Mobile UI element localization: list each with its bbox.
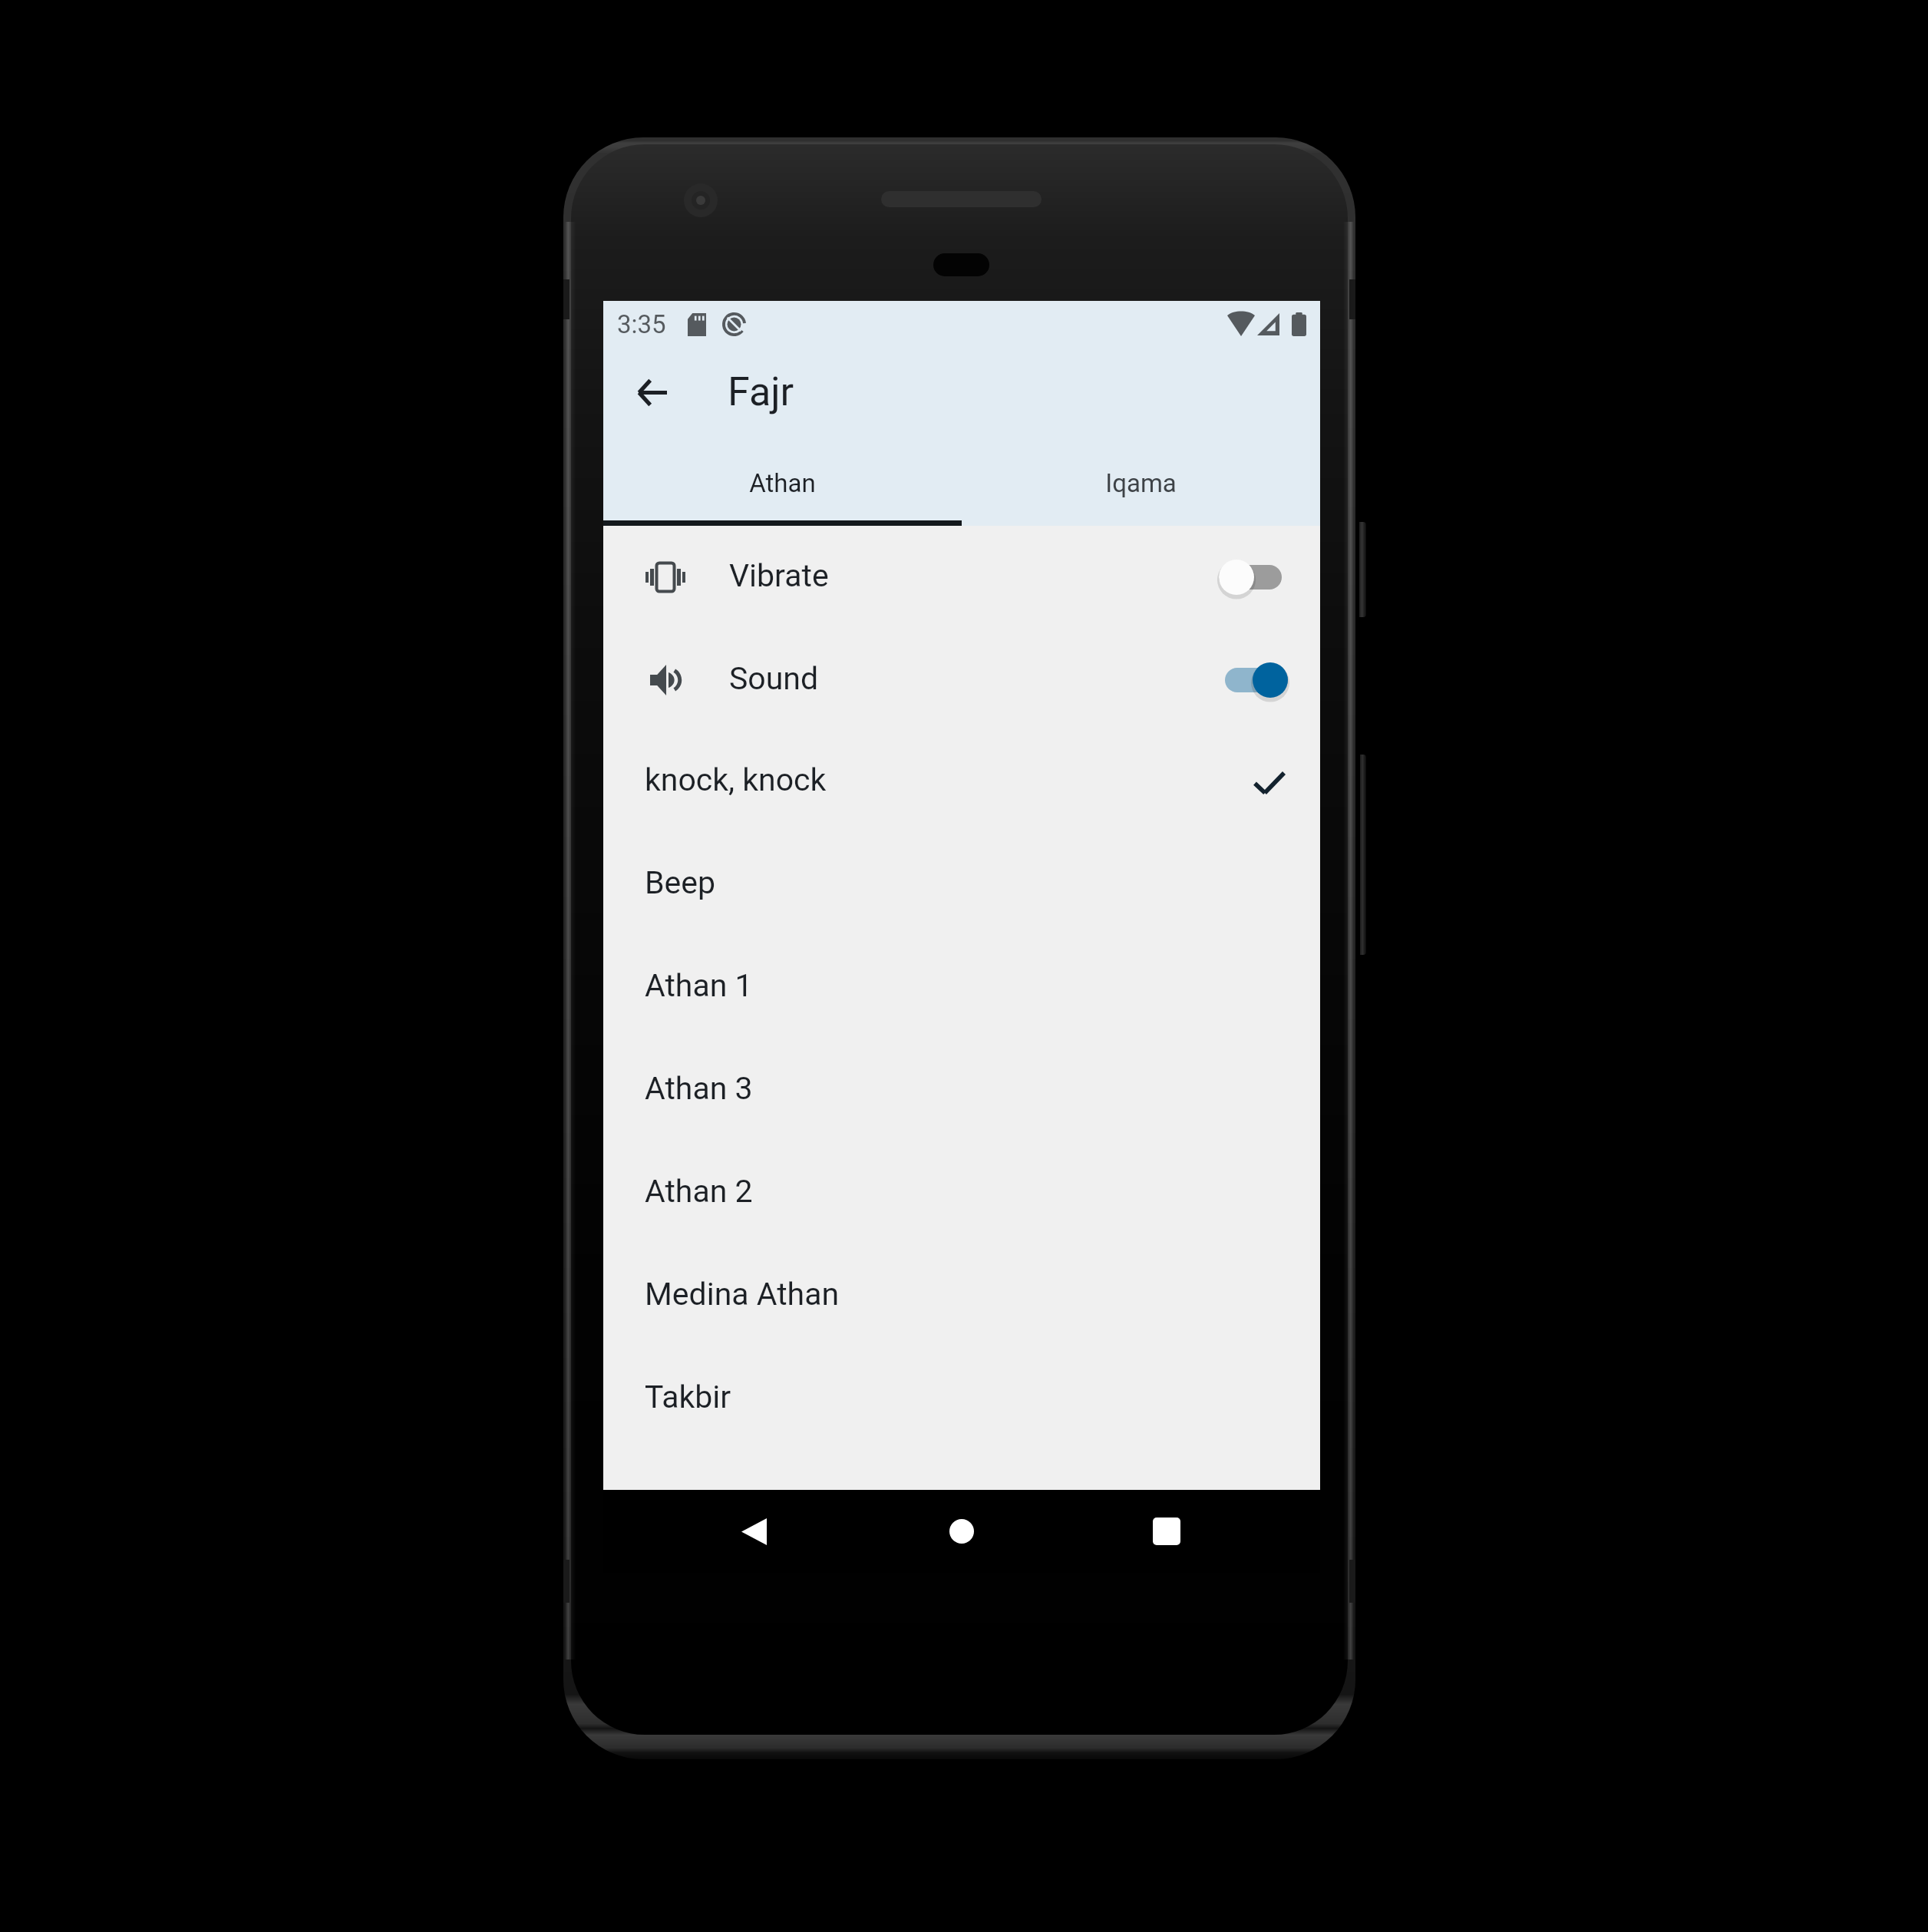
staticText: Athan 3 [645, 1070, 753, 1107]
button[interactable]: Medina Athan [603, 1246, 1320, 1349]
staticText: Athan [749, 468, 816, 498]
button[interactable]: Recent apps [1125, 1490, 1208, 1573]
button[interactable]: Sound [603, 629, 1320, 732]
button[interactable]: Sound on [1225, 660, 1288, 700]
button[interactable]: Navigate up [614, 355, 689, 430]
button[interactable]: Vibrate [603, 526, 1320, 629]
button[interactable]: Athan 1 [603, 937, 1320, 1040]
staticText: Iqama [1105, 468, 1177, 498]
button[interactable]: Vibrate off [1219, 557, 1282, 597]
button[interactable]: Athan [603, 455, 962, 526]
staticText: Takbir [645, 1379, 731, 1415]
staticText: Vibrate [729, 557, 829, 594]
staticText: Beep [645, 864, 716, 901]
staticText: Athan 2 [645, 1173, 753, 1210]
button[interactable]: Iqama [962, 455, 1320, 526]
button[interactable]: Athan 2 [603, 1143, 1320, 1246]
staticText: Fajr [728, 368, 794, 415]
staticText: Athan 1 [645, 967, 753, 1004]
staticText: Medina Athan [645, 1276, 840, 1313]
button[interactable]: Back [712, 1490, 795, 1573]
button[interactable]: Beep [603, 834, 1320, 937]
staticText: knock, knock [645, 761, 827, 798]
button[interactable]: Athan 3 [603, 1040, 1320, 1143]
button[interactable]: Home [920, 1490, 1003, 1573]
button[interactable]: knock, knock [603, 732, 1320, 834]
staticText: 3:35 [617, 309, 666, 339]
staticText: Sound [729, 660, 819, 697]
button[interactable]: Takbir [603, 1349, 1320, 1451]
